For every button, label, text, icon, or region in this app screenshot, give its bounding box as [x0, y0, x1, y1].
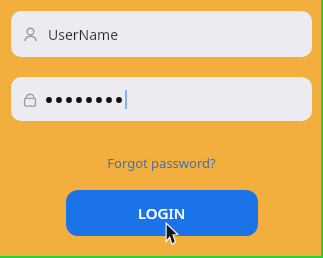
staticText: LOGIN [138, 203, 186, 223]
button[interactable]: Forgot password? [103, 152, 220, 174]
button[interactable]: LOGIN [66, 190, 258, 236]
staticText: Forgot password? [107, 154, 216, 172]
button[interactable] [11, 77, 312, 121]
button[interactable]: UserName [11, 11, 312, 57]
staticText: UserName [48, 25, 119, 44]
